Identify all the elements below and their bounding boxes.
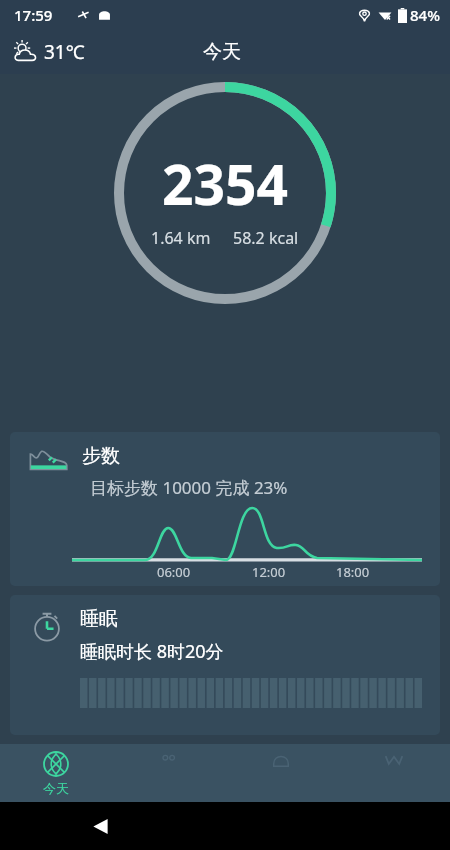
- staticText: 31℃: [44, 39, 85, 65]
- staticText: 84%: [410, 5, 440, 25]
- staticText: 步数: [82, 444, 120, 468]
- staticText: 58.2 kcal: [233, 227, 299, 249]
- staticText: 目标步数 10000 完成 23%: [90, 476, 288, 499]
- staticText: 12:00: [252, 563, 336, 581]
- staticText: 2354: [162, 146, 288, 221]
- button[interactable]: Back: [82, 808, 118, 844]
- staticText: 1.64 km: [151, 227, 211, 249]
- staticText: 今天: [43, 780, 69, 796]
- button[interactable]: 步数: [10, 432, 440, 586]
- staticText: 今天: [203, 40, 241, 64]
- staticText: 睡眠: [80, 607, 118, 631]
- staticText: 18:00: [336, 563, 422, 581]
- button[interactable]: 睡眠: [10, 595, 440, 735]
- button[interactable]: Step progress 2354 steps: [114, 82, 336, 304]
- staticText: 17:59: [14, 5, 53, 25]
- button[interactable]: 今天: [0, 744, 112, 802]
- staticText: 06:00: [157, 563, 252, 581]
- staticText: 睡眠时长 8时20分: [80, 639, 224, 664]
- button[interactable]: 31℃: [8, 36, 89, 68]
